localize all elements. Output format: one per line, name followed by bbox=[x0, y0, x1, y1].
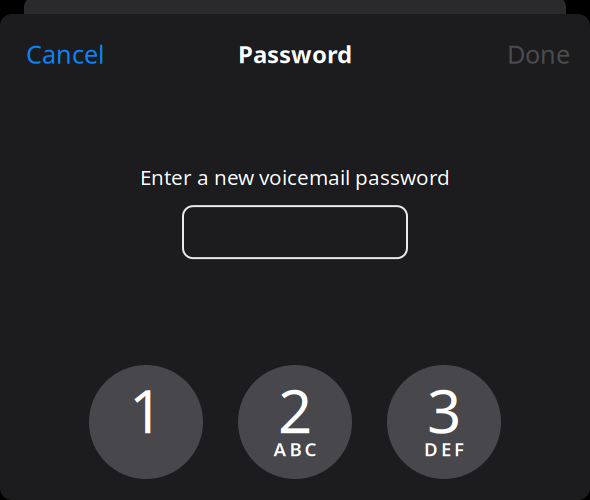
staticText: F bbox=[454, 437, 464, 461]
staticText: B bbox=[289, 437, 301, 461]
staticText: A bbox=[273, 437, 286, 461]
staticText: 2 bbox=[278, 370, 312, 450]
button[interactable]: 3 DEF bbox=[387, 365, 501, 479]
staticText: D bbox=[424, 437, 438, 461]
staticText: Cancel bbox=[26, 37, 105, 71]
staticText: 3 bbox=[427, 370, 461, 450]
staticText: E bbox=[441, 437, 451, 461]
staticText: Enter a new voicemail password bbox=[140, 163, 450, 191]
button[interactable]: Done bbox=[497, 28, 574, 80]
button[interactable]: Password field bbox=[183, 206, 407, 258]
staticText: Done bbox=[507, 37, 570, 71]
button[interactable]: 1 bbox=[89, 365, 203, 479]
button[interactable]: 2 ABC bbox=[238, 365, 352, 479]
button[interactable]: Cancel bbox=[16, 28, 115, 80]
staticText: C bbox=[304, 437, 316, 461]
staticText: 1 bbox=[129, 370, 163, 450]
staticText: Password bbox=[238, 38, 352, 70]
